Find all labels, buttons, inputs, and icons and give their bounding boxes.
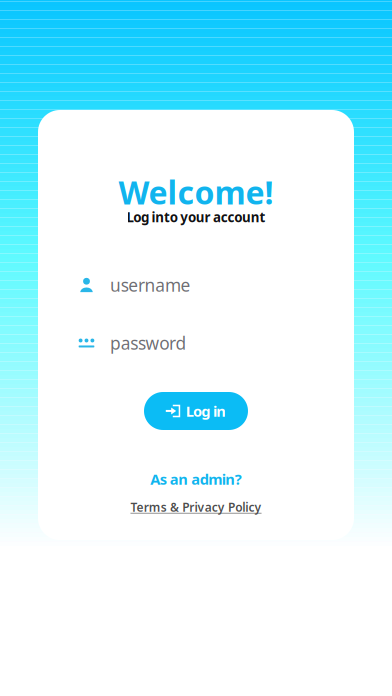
- staticText: Log into your account: [126, 208, 265, 226]
- staticText: Log in: [186, 401, 226, 421]
- button[interactable]: password: [38, 328, 354, 358]
- staticText: password: [110, 331, 187, 354]
- staticText: Welcome!: [118, 171, 273, 213]
- button[interactable]: username: [38, 270, 354, 300]
- button[interactable]: Log in: [144, 392, 248, 430]
- staticText: As an admin?: [150, 469, 242, 489]
- staticText: username: [110, 273, 191, 296]
- staticText: Terms & Privacy Policy: [130, 499, 262, 515]
- button[interactable]: Terms & Privacy Policy: [108, 497, 284, 517]
- button[interactable]: As an admin?: [116, 468, 276, 490]
